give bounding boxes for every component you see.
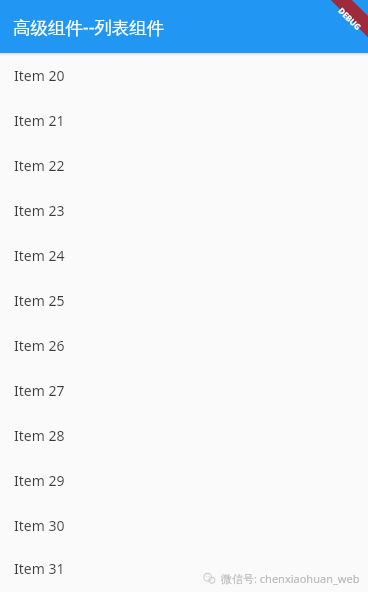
staticText: Item 25 [14,291,65,310]
button[interactable]: Item 24 [0,233,368,278]
staticText: Item 23 [14,201,65,220]
staticText: DEBUG [336,5,364,32]
button[interactable]: Item 21 [0,98,368,143]
button[interactable]: Item 25 [0,278,368,323]
staticText: Item 20 [14,66,65,85]
button[interactable]: Item 31 [0,548,368,589]
button[interactable]: Item 30 [0,503,368,548]
button[interactable]: Item 26 [0,323,368,368]
button[interactable]: Item 20 [0,56,368,98]
staticText: 微信号: chenxiaohuan_web [221,571,360,586]
button[interactable]: Item 23 [0,188,368,233]
button[interactable]: Item 22 [0,143,368,188]
staticText: Item 30 [14,516,65,535]
button[interactable]: Item 27 [0,368,368,413]
staticText: 高级组件--列表组件 [13,15,165,39]
staticText: Item 27 [14,381,65,400]
staticText: Item 26 [14,336,65,355]
staticText: Item 29 [14,471,65,490]
button[interactable]: Item 29 [0,458,368,503]
button[interactable]: Item 28 [0,413,368,458]
staticText: Item 31 [14,559,65,578]
staticText: Item 21 [14,111,65,130]
staticText: Item 24 [14,246,65,265]
staticText: Item 22 [14,156,65,175]
staticText: Item 28 [14,426,65,445]
